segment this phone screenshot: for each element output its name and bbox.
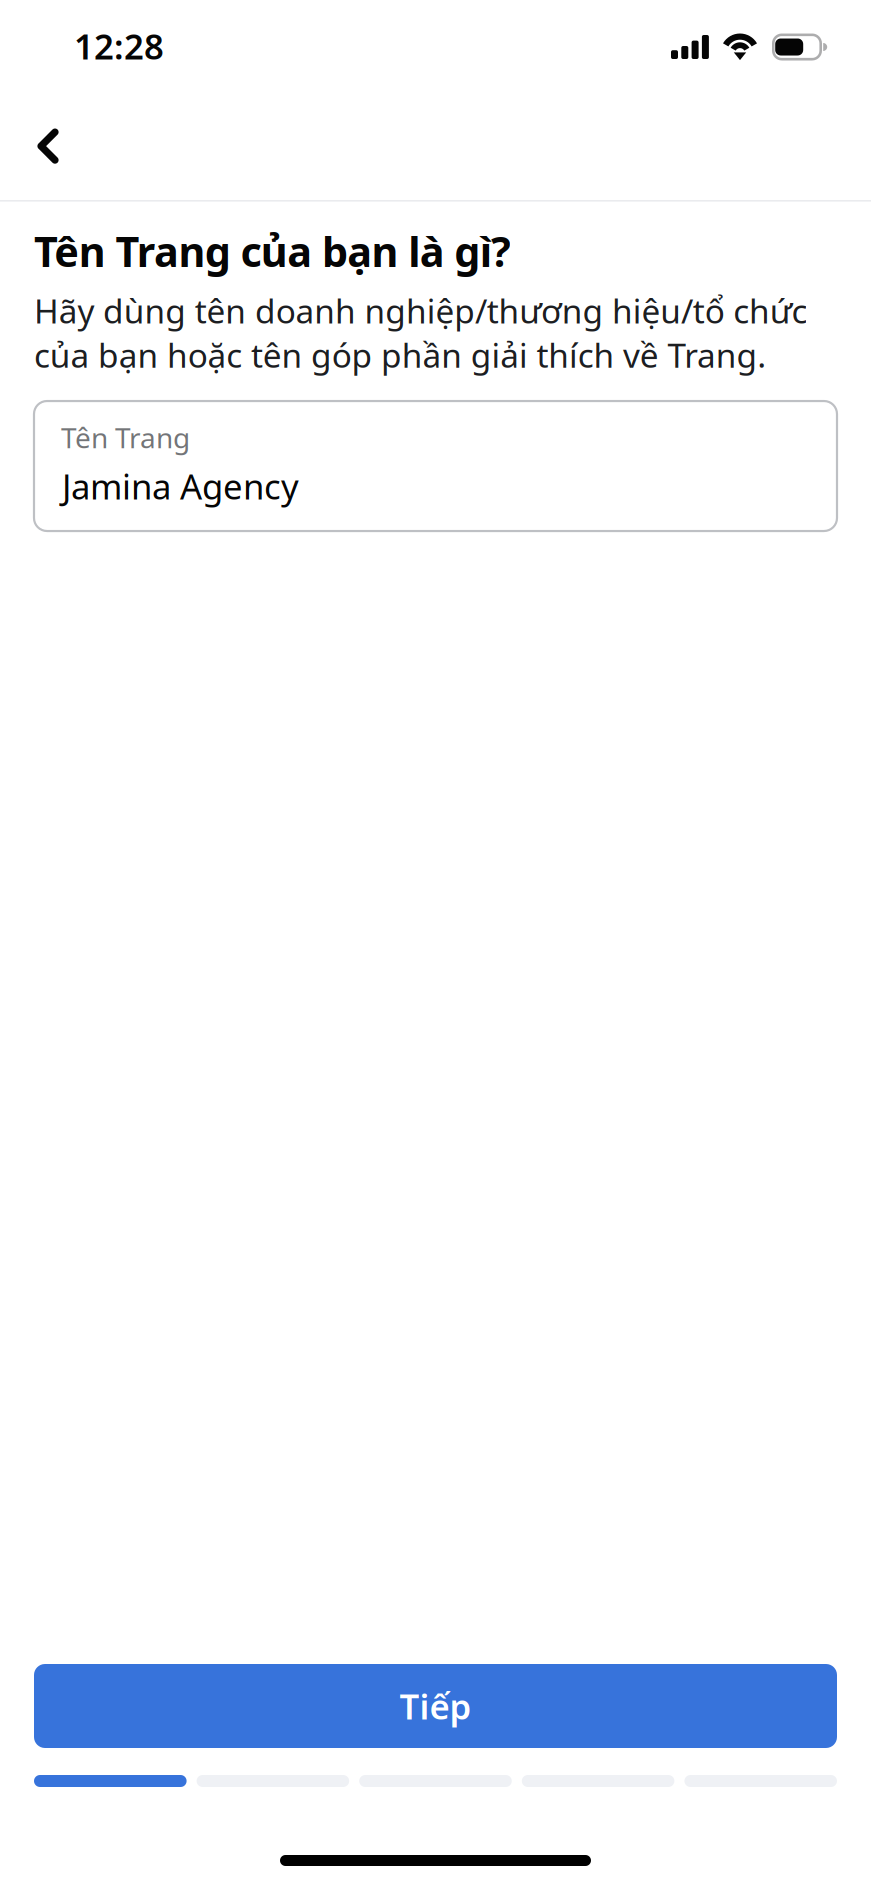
- staticText: Tên Trang của bạn là gì?: [34, 224, 511, 278]
- button[interactable]: Tiếp: [34, 1664, 837, 1748]
- button[interactable]: Tên Trang: [34, 401, 837, 531]
- staticText: Hãy dùng tên doanh nghiệp/thương hiệu/tổ…: [34, 288, 807, 377]
- staticText: Tiếp: [399, 1683, 471, 1729]
- staticText: Tên Trang: [61, 419, 190, 456]
- staticText: Jamina Agency: [62, 463, 299, 509]
- button[interactable]: Back: [17, 115, 79, 177]
- staticText: 12:28: [74, 23, 164, 69]
